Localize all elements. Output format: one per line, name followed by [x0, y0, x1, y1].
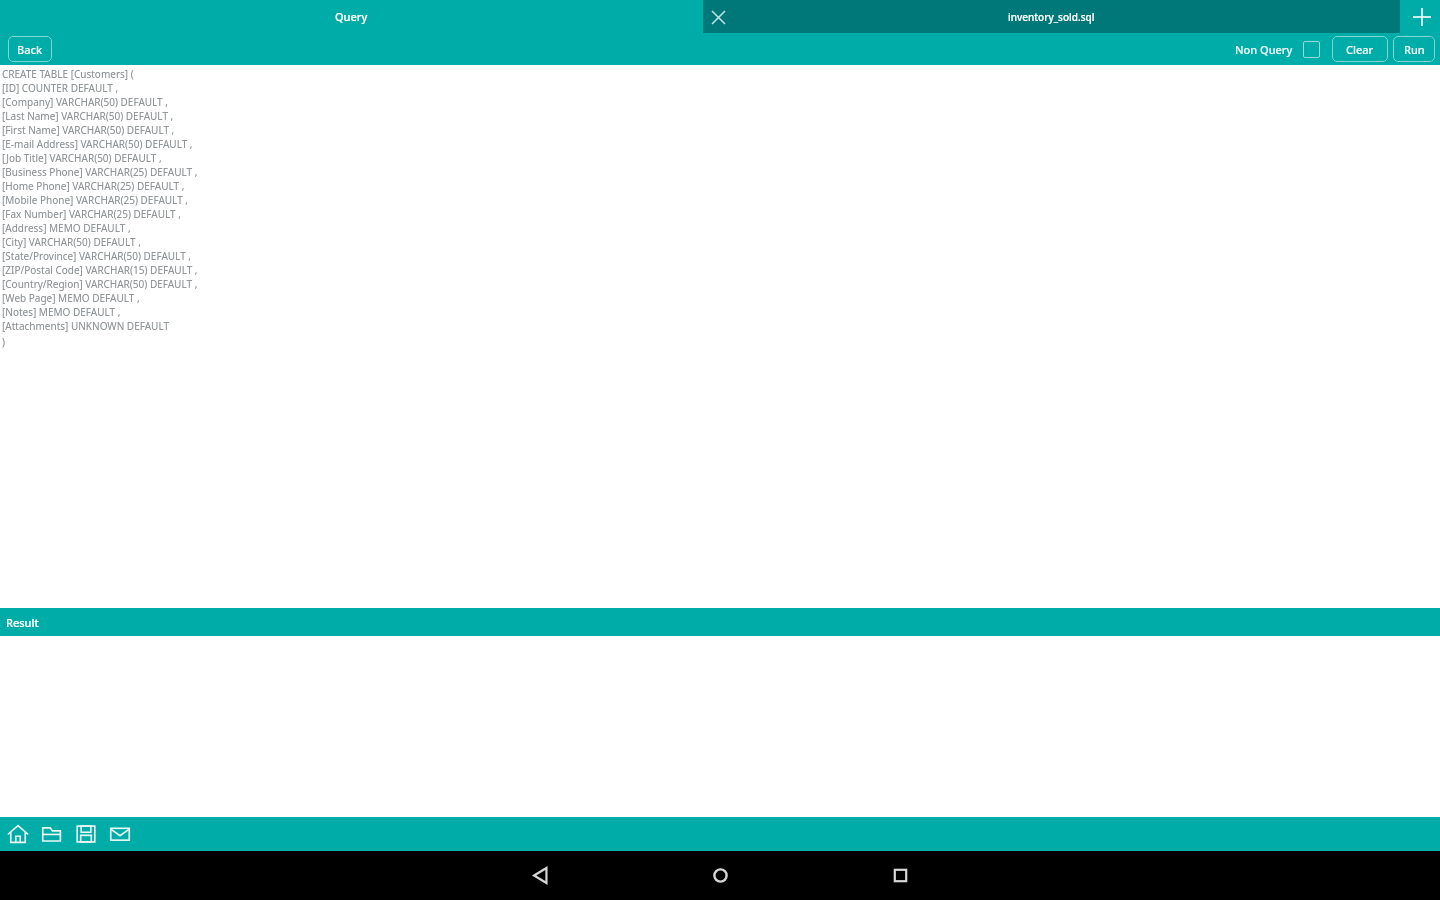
button[interactable]: Result: [0, 608, 1440, 636]
staticText: [ZIP/Postal Code] VARCHAR(15) DEFAULT ,: [2, 263, 198, 277]
button[interactable]: Back: [8, 36, 52, 62]
button[interactable]: Open file: [35, 817, 69, 851]
button[interactable]: Query: [0, 0, 703, 33]
staticText: [First Name] VARCHAR(50) DEFAULT ,: [2, 123, 175, 137]
staticText: [Web Page] MEMO DEFAULT ,: [2, 291, 140, 305]
staticText: [Company] VARCHAR(50) DEFAULT ,: [2, 95, 168, 109]
staticText: [Attachments] UNKNOWN DEFAULT: [2, 319, 170, 333]
button[interactable]: Non Query checkbox: [1303, 41, 1320, 58]
button[interactable]: Home: [630, 851, 810, 900]
staticText: [Fax Number] VARCHAR(25) DEFAULT ,: [2, 207, 181, 221]
staticText: Back: [17, 42, 43, 57]
staticText: Result: [6, 615, 39, 630]
staticText: [Mobile Phone] VARCHAR(25) DEFAULT ,: [2, 193, 188, 207]
button[interactable]: CREATE TABLE [Customers] (: [0, 65, 1440, 608]
staticText: [Business Phone] VARCHAR(25) DEFAULT ,: [2, 165, 198, 179]
staticText: CREATE TABLE [Customers] (: [2, 67, 134, 81]
staticText: Clear: [1346, 42, 1374, 57]
button[interactable]: Home: [1, 817, 35, 851]
button[interactable]: Close tab: [703, 2, 733, 32]
button[interactable]: Clear: [1332, 36, 1388, 62]
staticText: [Address] MEMO DEFAULT ,: [2, 221, 131, 235]
staticText: [City] VARCHAR(50) DEFAULT ,: [2, 235, 141, 249]
staticText: Non Query: [1235, 42, 1293, 57]
button[interactable]: Recent apps: [810, 851, 990, 900]
staticText: Query: [335, 9, 368, 24]
staticText: [Notes] MEMO DEFAULT ,: [2, 305, 121, 319]
button[interactable]: Run: [1393, 36, 1435, 62]
staticText: [Last Name] VARCHAR(50) DEFAULT ,: [2, 109, 174, 123]
staticText: inventory_sold.sql: [1008, 10, 1095, 24]
staticText: [E-mail Address] VARCHAR(50) DEFAULT ,: [2, 137, 193, 151]
staticText: [Job Title] VARCHAR(50) DEFAULT ,: [2, 151, 162, 165]
button[interactable]: Mail: [103, 817, 137, 851]
staticText: [Country/Region] VARCHAR(50) DEFAULT ,: [2, 277, 198, 291]
staticText: [State/Province] VARCHAR(50) DEFAULT ,: [2, 249, 191, 263]
staticText: [ID] COUNTER DEFAULT ,: [2, 81, 119, 95]
button[interactable]: Back: [450, 851, 630, 900]
button[interactable]: Close tab: [703, 0, 1400, 33]
staticText: [Home Phone] VARCHAR(25) DEFAULT ,: [2, 179, 185, 193]
button[interactable]: New tab: [1404, 0, 1440, 33]
staticText: ): [2, 335, 5, 349]
button[interactable]: Save: [69, 817, 103, 851]
staticText: Run: [1404, 42, 1425, 57]
